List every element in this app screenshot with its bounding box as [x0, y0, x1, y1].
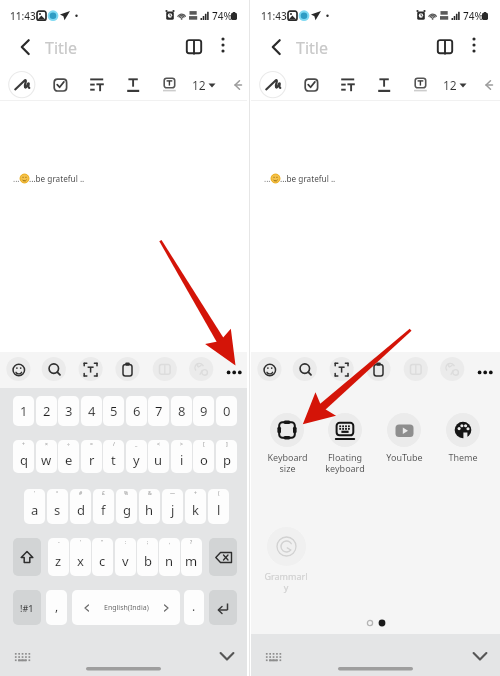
button[interactable]: Search — [292, 357, 318, 383]
button[interactable]: Text style — [157, 70, 181, 94]
button[interactable]: — — [162, 489, 183, 524]
staticText: ...be grateful .. — [280, 173, 336, 184]
button[interactable]: Underline — [120, 70, 144, 94]
button[interactable]: Space, English(India) — [72, 590, 180, 625]
button[interactable]: Text extraction — [329, 357, 355, 383]
button[interactable]: Previous tools — [228, 70, 250, 92]
button[interactable]: Handwriting — [258, 70, 287, 99]
button[interactable]: ] — [216, 440, 237, 473]
button[interactable]: Grammarl y — [260, 527, 312, 593]
button[interactable]: < — [148, 440, 169, 473]
button[interactable]: Font size 12 — [441, 70, 471, 100]
button[interactable]: ' — [70, 538, 91, 576]
staticText: English(India) — [104, 603, 149, 613]
button[interactable]: 4 — [81, 396, 102, 426]
button[interactable]: Clipboard — [115, 357, 141, 383]
button[interactable]: Emoji — [5, 357, 31, 383]
button[interactable]: Back — [263, 32, 293, 62]
button[interactable]: Clipboard — [366, 357, 392, 383]
button[interactable]: Underline — [371, 70, 395, 94]
button[interactable]: Split keyboard — [404, 357, 430, 383]
staticText: , — [169, 539, 171, 546]
staticText: k — [192, 501, 199, 519]
button[interactable]: ÷ — [58, 440, 79, 473]
button[interactable]: Split keyboard — [153, 357, 179, 383]
button[interactable]: Previous tools — [479, 70, 500, 92]
button[interactable]: Translate — [189, 357, 215, 383]
button[interactable]: ? — [181, 538, 202, 576]
button[interactable]: 3 — [58, 396, 79, 426]
button[interactable]: _ — [126, 440, 147, 473]
button[interactable]: Handwriting — [7, 70, 36, 99]
button[interactable]: Enter — [209, 590, 237, 625]
button[interactable]: More options — [220, 357, 246, 383]
button[interactable]: [ — [193, 440, 214, 473]
staticText: + — [22, 441, 25, 448]
button[interactable]: Text style — [408, 70, 432, 94]
button[interactable]: Change keyboard — [9, 643, 37, 671]
button[interactable]: Floating keyboard — [319, 413, 371, 474]
button[interactable]: Checklist — [48, 70, 72, 94]
staticText: 7 — [155, 402, 163, 420]
button[interactable]: , — [159, 538, 180, 576]
button[interactable]: !#1 — [13, 590, 41, 625]
button[interactable]: Paragraph style — [335, 70, 359, 94]
button[interactable]: 5 — [103, 396, 124, 426]
staticText: ...be grateful .. — [29, 173, 85, 184]
button[interactable]: ° — [47, 489, 68, 524]
button[interactable]: " — [92, 538, 113, 576]
button[interactable]: 7 — [148, 396, 169, 426]
button[interactable]: = — [81, 440, 102, 473]
button[interactable]: Keyboard size — [261, 413, 313, 474]
button[interactable]: Backspace — [209, 538, 237, 576]
button[interactable]: Change keyboard — [260, 643, 288, 671]
button[interactable]: ' — [24, 489, 45, 524]
button[interactable]: Hide keyboard — [213, 642, 241, 670]
staticText: b — [144, 552, 152, 570]
button[interactable]: Search — [41, 357, 67, 383]
button[interactable]: Paragraph style — [84, 70, 108, 94]
staticText: y — [133, 451, 140, 469]
button[interactable]: > — [171, 440, 192, 473]
button[interactable]: . — [184, 590, 204, 625]
button[interactable]: Reading mode — [430, 31, 460, 61]
button[interactable]: Emoji — [256, 357, 282, 383]
button[interactable]: Reading mode — [179, 31, 209, 61]
button[interactable]: : — [115, 538, 136, 576]
button[interactable]: Shift — [13, 538, 41, 576]
staticText: : — [125, 539, 127, 546]
button[interactable]: Hide keyboard — [466, 642, 494, 670]
button[interactable]: More options — [464, 34, 486, 56]
button[interactable]: # — [70, 489, 91, 524]
button[interactable]: 2 — [36, 396, 57, 426]
button[interactable]: ( — [208, 489, 229, 524]
button[interactable]: 1 — [13, 396, 34, 426]
button[interactable]: £ — [93, 489, 114, 524]
button[interactable]: YouTube — [378, 413, 430, 463]
button[interactable]: Translate — [440, 357, 466, 383]
button[interactable]: 8 — [171, 396, 192, 426]
staticText: + — [194, 490, 197, 497]
button[interactable]: × — [36, 440, 57, 473]
button[interactable]: , — [46, 590, 67, 625]
staticText: 6 — [133, 402, 141, 420]
button[interactable]: Font size 12 — [190, 70, 220, 100]
button[interactable]: + — [185, 489, 206, 524]
button[interactable]: ; — [137, 538, 158, 576]
staticText: & — [148, 490, 152, 497]
button[interactable]: 0 — [216, 396, 237, 426]
button[interactable]: Back — [12, 32, 42, 62]
button[interactable]: 6 — [126, 396, 147, 426]
button[interactable]: / — [103, 440, 124, 473]
button[interactable]: & — [139, 489, 160, 524]
button[interactable]: 9 — [193, 396, 214, 426]
button[interactable]: More options — [213, 34, 235, 56]
button[interactable]: Checklist — [299, 70, 323, 94]
button[interactable]: Text extraction — [78, 357, 104, 383]
button[interactable]: + — [13, 440, 34, 473]
button[interactable]: % — [116, 489, 137, 524]
button[interactable]: More options — [471, 357, 497, 383]
button[interactable]: Theme — [437, 413, 489, 463]
button[interactable]: - — [48, 538, 69, 576]
staticText: h — [145, 501, 154, 519]
